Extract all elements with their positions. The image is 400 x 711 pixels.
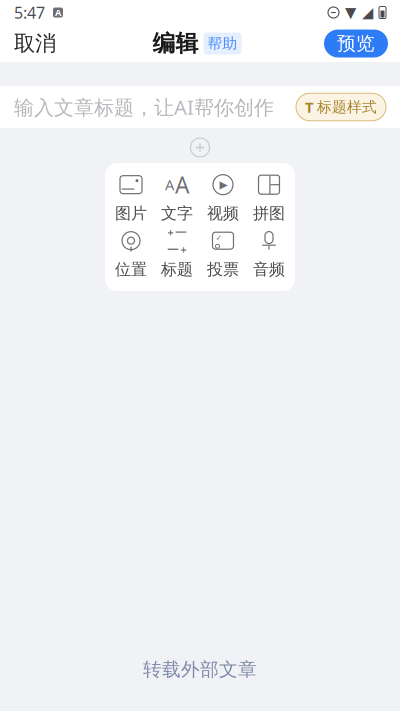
button[interactable]: 帮助 bbox=[203, 32, 241, 54]
staticText: ▶ bbox=[219, 179, 227, 191]
staticText: 拼图 bbox=[253, 204, 285, 223]
button[interactable]: 取消 bbox=[0, 22, 70, 65]
staticText: 标题 bbox=[161, 260, 193, 279]
staticText: 标题样式 bbox=[317, 98, 377, 116]
staticText: T bbox=[305, 97, 313, 117]
staticText: 编辑 bbox=[152, 30, 198, 57]
button[interactable]: 音频 bbox=[246, 229, 292, 279]
staticText: 转载外部文章 bbox=[143, 658, 257, 681]
staticText: ◢ bbox=[362, 4, 373, 21]
staticText: 输入文章标题，让AI帮你创作 bbox=[14, 94, 274, 120]
staticText: 图片 bbox=[115, 204, 147, 223]
staticText: 视频 bbox=[207, 204, 239, 223]
button[interactable]: ▶ bbox=[200, 173, 246, 223]
staticText: 取消 bbox=[14, 30, 56, 57]
staticText: A bbox=[165, 175, 174, 194]
staticText: 音频 bbox=[253, 260, 285, 279]
staticText: 5:47 bbox=[14, 2, 45, 23]
button[interactable]: ✓ bbox=[200, 229, 246, 279]
button[interactable]: 预览 bbox=[324, 29, 388, 57]
staticText: 文字 bbox=[161, 204, 193, 223]
staticText: ▼ bbox=[345, 4, 356, 21]
staticText: + bbox=[167, 225, 173, 239]
button[interactable]: 图片 bbox=[108, 173, 154, 223]
button[interactable]: T bbox=[296, 93, 386, 121]
button[interactable]: A bbox=[154, 173, 200, 223]
staticText: 投票 bbox=[207, 260, 239, 279]
button[interactable]: 位置 bbox=[108, 229, 154, 279]
button[interactable]: + bbox=[154, 229, 200, 279]
button[interactable]: Add block bbox=[190, 138, 209, 157]
staticText: + bbox=[180, 242, 186, 256]
staticText: 帮助 bbox=[207, 34, 237, 52]
staticText: 位置 bbox=[115, 260, 147, 279]
staticText: A bbox=[55, 6, 61, 19]
staticText: 预览 bbox=[337, 32, 375, 55]
staticText: A bbox=[175, 170, 189, 200]
staticText: ✓ bbox=[215, 233, 222, 242]
button[interactable]: 转载外部文章 bbox=[123, 650, 277, 689]
button[interactable]: 拼图 bbox=[246, 173, 292, 223]
